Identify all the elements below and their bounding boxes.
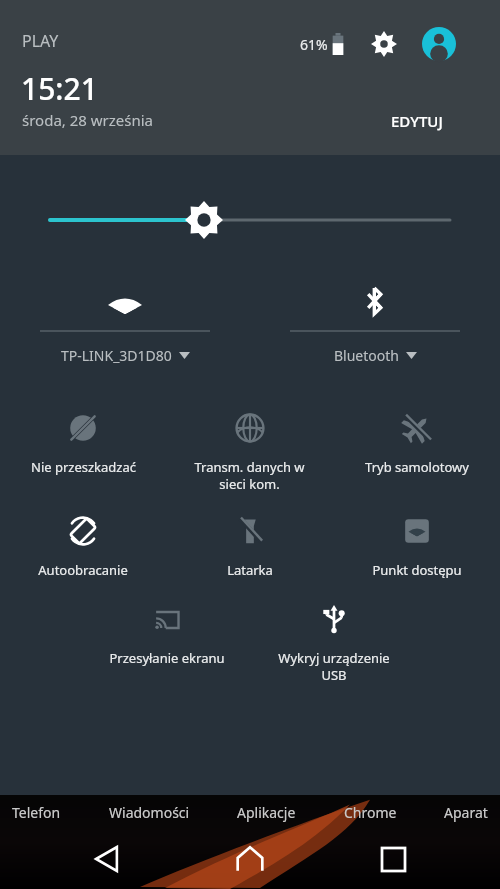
button[interactable]: Recents xyxy=(357,830,429,888)
staticText: Przesyłanie ekranu xyxy=(109,649,225,667)
staticText: środa, 28 września xyxy=(22,110,154,130)
staticText: Transm. danych w sieci kom. xyxy=(194,458,305,493)
staticText: Aplikacje xyxy=(237,803,296,822)
button[interactable]: Latarka xyxy=(166,511,333,583)
staticText: Autoobracanie xyxy=(38,561,128,579)
staticText: Latarka xyxy=(227,561,273,579)
staticText: EDYTUJ xyxy=(391,111,443,131)
staticText: Wiadomości xyxy=(109,803,190,822)
button[interactable]: Autoobracanie xyxy=(0,511,166,583)
staticText: PLAY xyxy=(22,30,59,52)
staticText: Punkt dostępu xyxy=(372,561,462,579)
button[interactable]: Nie przeszkadzać xyxy=(0,408,166,480)
button[interactable]: Home xyxy=(214,830,286,888)
staticText: Tryb samolotowy xyxy=(365,458,469,476)
button[interactable]: Przesyłanie ekranu xyxy=(83,599,250,671)
button[interactable]: Settings xyxy=(367,27,401,61)
button[interactable]: Brightness xyxy=(0,155,500,270)
button[interactable]: Punkt dostępu xyxy=(333,511,500,583)
staticText: Bluetooth xyxy=(334,346,399,365)
button[interactable]: Back xyxy=(71,830,143,888)
button[interactable]: Aparat xyxy=(444,803,488,822)
staticText: TP-LINK_3D1D80 xyxy=(61,346,172,365)
button[interactable]: Telefon xyxy=(12,803,61,822)
button[interactable]: EDYTUJ xyxy=(385,105,449,137)
staticText: Chrome xyxy=(344,803,397,822)
staticText: Wykryj urządzenie USB xyxy=(278,649,390,684)
staticText: 15:21 xyxy=(21,68,98,109)
button[interactable]: Chrome xyxy=(344,803,397,822)
button[interactable]: Tryb samolotowy xyxy=(333,408,500,480)
staticText: Aparat xyxy=(444,803,488,822)
button[interactable]: Wykryj urządzenie USB xyxy=(250,599,417,688)
button[interactable]: Aplikacje xyxy=(237,803,296,822)
button[interactable]: Transm. danych w sieci kom. xyxy=(166,408,333,497)
staticText: 61% xyxy=(300,35,328,54)
button[interactable]: Bluetooth xyxy=(250,270,500,365)
button[interactable]: User xyxy=(421,26,457,62)
staticText: Nie przeszkadzać xyxy=(31,458,136,476)
staticText: Telefon xyxy=(12,803,61,822)
button[interactable]: TP-LINK_3D1D80 xyxy=(0,270,250,365)
button[interactable]: Wiadomości xyxy=(109,803,190,822)
